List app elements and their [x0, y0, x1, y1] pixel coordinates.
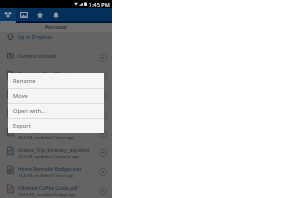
staticText: Open with...	[13, 107, 46, 115]
staticText: 1:45 PM	[89, 1, 110, 8]
staticText: 312.0 KB, modified 2 weeks ago	[18, 116, 79, 122]
button[interactable]: Passport Scan.jpg	[0, 108, 112, 127]
button[interactable]: More options	[98, 129, 108, 139]
staticText: Home Remodel Budget.xlsx	[18, 166, 82, 173]
button[interactable]: Scanned Receipts.zip	[0, 89, 112, 108]
staticText: Personal	[45, 24, 67, 31]
staticText: 1.2 MB, modified 1 week ago	[18, 97, 74, 103]
button[interactable]: Up to Dropbox	[0, 32, 112, 51]
button[interactable]: More options	[98, 186, 108, 196]
staticText: Resume_final.docx	[18, 128, 61, 135]
button[interactable]: Favorites	[32, 8, 48, 23]
button[interactable]: Ultimate Coffee Guide.pdf	[0, 184, 112, 198]
button[interactable]: More options	[98, 167, 108, 177]
button[interactable]: More options	[98, 53, 108, 63]
button[interactable]: Move	[8, 89, 104, 103]
button[interactable]: Resume_final.docx	[0, 127, 112, 146]
staticText: Scanned Receipts.zip	[18, 90, 67, 97]
button[interactable]: Rename	[8, 73, 104, 88]
button[interactable]: Open with...	[8, 104, 104, 118]
button[interactable]: Home Remodel Budget.xlsx	[0, 165, 112, 184]
button[interactable]: Camera Uploads	[0, 51, 112, 70]
button[interactable]: More options	[98, 91, 108, 101]
button[interactable]: Marketing Plan Q3.pptx	[0, 70, 112, 89]
button[interactable]: More options	[98, 110, 108, 120]
staticText: Move	[13, 92, 28, 100]
button[interactable]: Greece_Trip_Itinerary_July.docx	[0, 146, 112, 165]
staticText: Ultimate Coffee Guide.pdf	[18, 185, 78, 192]
staticText: 762.5 KB, modified 5 days ago	[18, 192, 76, 198]
button[interactable]: Export	[8, 119, 104, 133]
button[interactable]: Notifications	[48, 8, 64, 23]
staticText: Rename	[13, 77, 36, 85]
staticText: Camera Uploads	[18, 53, 57, 60]
staticText: 18.1 KB, modified 3 days ago	[18, 78, 74, 84]
staticText: Marketing Plan Q3.pptx	[18, 71, 73, 78]
button[interactable]: Files	[0, 8, 16, 23]
staticText: Up to Dropbox	[18, 34, 52, 41]
button[interactable]: Photos	[16, 8, 32, 23]
staticText: 26.5 KB, modified 1 hour ago	[18, 135, 74, 141]
staticText: 49.3 KB, modified 2 months ago	[18, 154, 80, 160]
staticText: 14.8 KB, modified 1 hour ago	[18, 173, 74, 179]
staticText: Export	[13, 122, 31, 130]
button[interactable]: More options	[98, 148, 108, 158]
staticText: Greece_Trip_Itinerary_July.docx	[18, 147, 90, 154]
button[interactable]: More options	[98, 72, 108, 82]
staticText: Passport Scan.jpg	[18, 109, 59, 116]
